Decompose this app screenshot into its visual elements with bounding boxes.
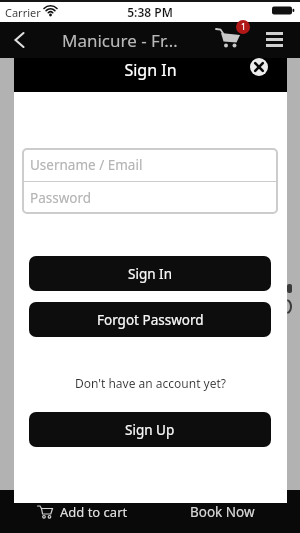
- button[interactable]: Add to cart: [0, 490, 150, 533]
- button[interactable]: [6, 26, 34, 54]
- staticText: Manicure - Fr…: [62, 29, 178, 52]
- staticText: Sign In: [14, 59, 287, 81]
- staticText: Password: [30, 189, 92, 207]
- staticText: Sign Up: [125, 421, 175, 439]
- button[interactable]: Book Now: [166, 490, 278, 533]
- button[interactable]: Forgot Password: [29, 302, 271, 337]
- button[interactable]: 1: [212, 23, 252, 57]
- button[interactable]: [266, 32, 284, 48]
- button[interactable]: Username / Email: [22, 148, 278, 181]
- staticText: Book Now: [190, 503, 255, 521]
- staticText: Forgot Password: [97, 311, 204, 329]
- button[interactable]: [250, 58, 268, 76]
- staticText: 1: [241, 21, 246, 33]
- button[interactable]: Sign In: [29, 256, 271, 291]
- staticText: 5:38 PM: [0, 4, 300, 20]
- button[interactable]: Password: [22, 181, 278, 214]
- button[interactable]: Sign Up: [29, 412, 271, 447]
- staticText: Username / Email: [30, 156, 143, 174]
- staticText: Carrier: [5, 5, 41, 20]
- staticText: Don't have an account yet?: [14, 375, 287, 391]
- staticText: Sign In: [128, 265, 172, 283]
- staticText: Add to cart: [60, 503, 128, 521]
